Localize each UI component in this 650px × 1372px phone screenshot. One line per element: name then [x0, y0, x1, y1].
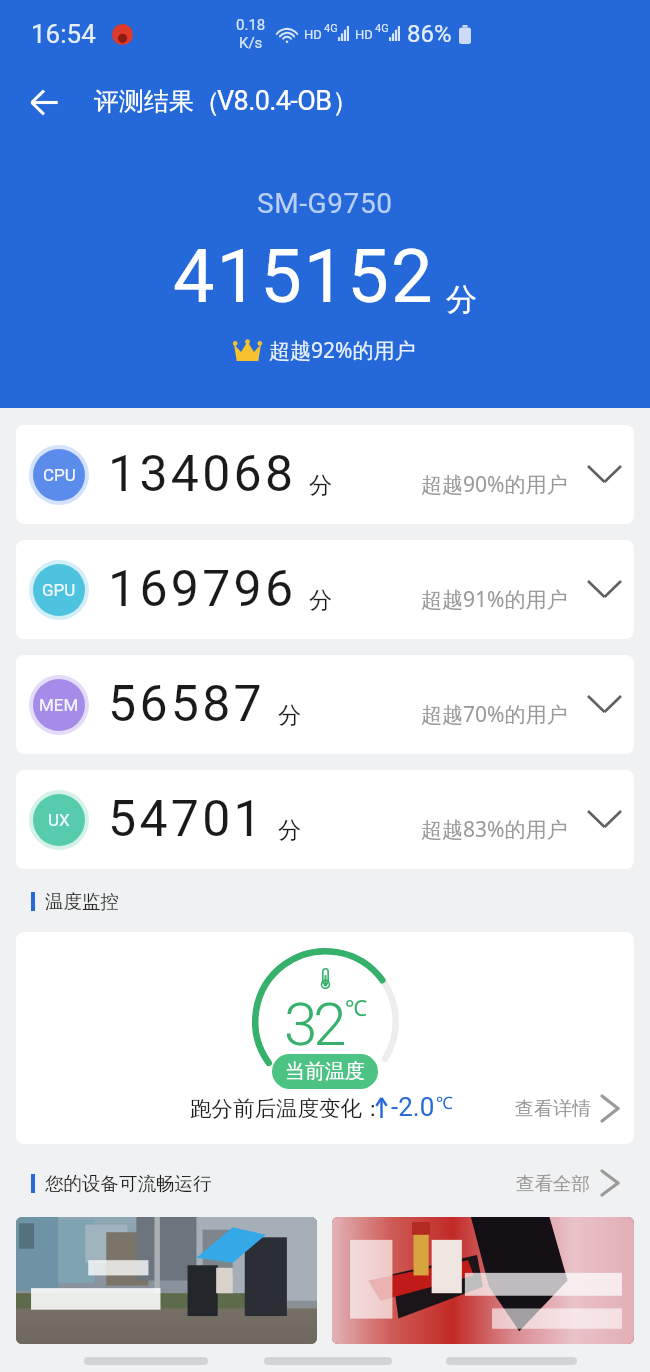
staticText: 分 — [446, 280, 477, 319]
staticText: 超越83%的用户 — [421, 815, 568, 844]
staticText: 评测结果 — [94, 86, 194, 117]
staticText: 415152 — [173, 233, 435, 320]
button[interactable]: 查看全部 — [516, 1168, 620, 1198]
staticText: 86% — [407, 20, 452, 48]
staticText: 超越70%的用户 — [421, 700, 568, 729]
staticText: 169796 — [108, 560, 297, 619]
staticText: ℃ — [345, 992, 367, 1022]
staticText: MEM — [39, 695, 79, 715]
staticText: UX — [48, 810, 70, 830]
staticText: 分 — [278, 701, 301, 730]
staticText: 16:54 — [31, 19, 96, 49]
staticText: 32 — [284, 989, 343, 1059]
staticText: 4G — [324, 22, 338, 35]
staticText: 您的设备可流畅运行 — [45, 1172, 212, 1195]
staticText: 温度监控 — [45, 890, 119, 913]
button[interactable]: GPU — [16, 540, 634, 639]
staticText: ℃ — [436, 1091, 453, 1114]
staticText: 分 — [278, 816, 301, 845]
staticText: K/s — [239, 34, 263, 52]
button[interactable]: UX — [16, 770, 634, 869]
staticText: 跑分前后温度变化： — [190, 1095, 384, 1122]
staticText: 54701 — [108, 790, 266, 849]
staticText: HD — [355, 27, 373, 42]
staticText: 超越92%的用户 — [269, 336, 416, 365]
button[interactable]: 查看详情 — [515, 1093, 620, 1124]
staticText: 超越90%的用户 — [421, 470, 568, 499]
button[interactable]: Back — [13, 71, 75, 133]
button[interactable] — [16, 1217, 317, 1344]
staticText: 分 — [309, 471, 332, 500]
staticText: V8.0.4-OB — [217, 85, 332, 117]
staticText: 超越91%的用户 — [421, 585, 568, 614]
staticText: 当前温度 — [285, 1059, 365, 1084]
button[interactable]: CPU — [16, 425, 634, 524]
staticText: HD — [304, 27, 322, 42]
staticText: ） — [332, 85, 359, 119]
staticText: 分 — [309, 586, 332, 615]
staticText: 0.18 — [236, 16, 266, 34]
staticText: 查看详情 — [515, 1097, 591, 1121]
button[interactable]: MEM — [16, 655, 634, 754]
staticText: GPU — [42, 580, 76, 600]
staticText: （ — [193, 85, 220, 119]
staticText: 查看全部 — [516, 1172, 590, 1195]
staticText: 4G — [375, 22, 389, 35]
button[interactable]: 当前温度 — [272, 1054, 378, 1089]
staticText: 56587 — [108, 675, 266, 734]
staticText: 134068 — [108, 445, 297, 504]
button[interactable] — [332, 1217, 634, 1344]
staticText: SM-G9750 — [257, 187, 393, 220]
staticText: CPU — [43, 465, 76, 485]
staticText: -2.0 — [391, 1092, 435, 1122]
